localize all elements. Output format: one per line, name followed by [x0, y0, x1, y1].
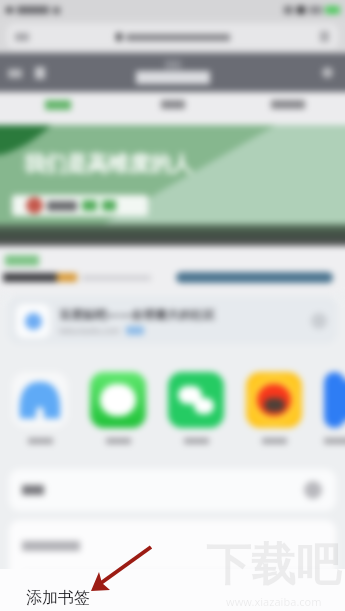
- button[interactable]: Copy: [9, 469, 336, 511]
- button[interactable]: 百度贴吧——全球最大的社区: [8, 297, 337, 344]
- button[interactable]: [9, 520, 336, 571]
- button[interactable]: Options: [311, 313, 327, 329]
- other: Copy: [304, 481, 322, 499]
- button[interactable]: AirDrop: [12, 372, 68, 444]
- staticText: 我们是高维度的人: [24, 151, 192, 177]
- button[interactable]: More: [324, 372, 345, 444]
- button[interactable]: 添加书签: [0, 569, 345, 611]
- button[interactable]: Messages: [90, 372, 146, 444]
- button[interactable]: WeChat: [168, 372, 224, 444]
- button[interactable]: 添加书签: [9, 572, 336, 608]
- staticText: 百度贴吧——全球最大的社区: [59, 306, 216, 322]
- staticText: www.xiazaiba.com: [226, 594, 322, 609]
- staticText: tieba.baidu.com: [59, 325, 120, 336]
- staticText: 添加书签: [26, 581, 86, 600]
- button[interactable]: Firefox: [246, 372, 302, 444]
- staticText: 添加书签: [26, 588, 90, 608]
- staticText: 下载吧: [206, 537, 341, 594]
